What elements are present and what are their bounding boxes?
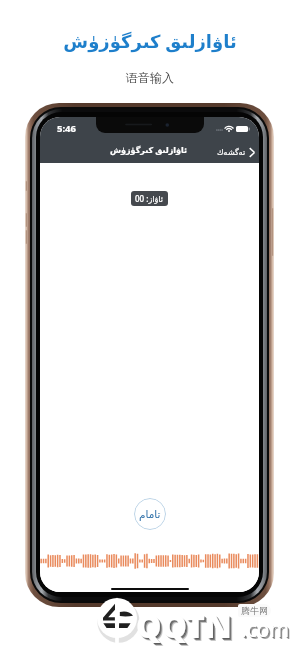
staticText: تامام — [139, 508, 161, 520]
staticText: ئاۋازلىق كىرگۈزۈش — [110, 144, 188, 155]
staticText: تەگشەك — [217, 148, 246, 157]
staticText: .com — [242, 616, 291, 645]
staticText: ئاۋاز: 00 — [135, 193, 164, 204]
staticText: QQTN — [138, 606, 234, 649]
staticText: .com — [241, 615, 290, 644]
staticText: .com — [242, 616, 291, 645]
staticText: 5:46 — [57, 122, 76, 135]
button[interactable]: تەگشەك — [211, 145, 259, 160]
staticText: 腾牛网 — [241, 605, 268, 616]
staticText: QQTN — [138, 606, 234, 649]
button[interactable]: تامام — [134, 498, 166, 530]
staticText: .com — [243, 617, 292, 646]
staticText: QQTN — [137, 605, 233, 649]
staticText: .com — [243, 617, 292, 646]
staticText: 语音输入 — [126, 70, 174, 85]
other: Back — [249, 147, 255, 158]
staticText: QQTN — [139, 607, 235, 649]
staticText: ئاۋازلىق كىرگۈزۈش — [63, 29, 237, 54]
staticText: QQTN — [136, 604, 232, 648]
